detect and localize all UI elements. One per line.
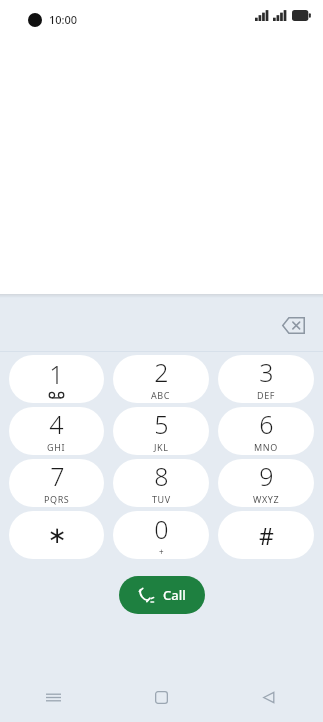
button[interactable]: Recents xyxy=(0,672,107,722)
staticText: TUV xyxy=(152,493,171,505)
button[interactable]: 3 xyxy=(218,355,314,403)
staticText: 2 xyxy=(154,355,169,389)
staticText: PQRS xyxy=(44,493,70,505)
button[interactable]: # xyxy=(218,511,314,559)
button[interactable]: Backspace xyxy=(276,308,310,342)
staticText: 5 xyxy=(154,407,169,441)
staticText: 1 xyxy=(49,357,64,391)
staticText: ABC xyxy=(151,389,171,401)
staticText: ∗ xyxy=(47,522,67,549)
staticText: Call xyxy=(163,586,186,604)
button[interactable]: 7 xyxy=(9,459,104,507)
staticText: JKL xyxy=(154,441,169,453)
button[interactable]: 9 xyxy=(218,459,314,507)
button[interactable]: ∗ xyxy=(9,511,104,559)
button[interactable]: 5 xyxy=(113,407,209,455)
button[interactable]: 8 xyxy=(113,459,209,507)
staticText: 7 xyxy=(50,459,65,493)
button[interactable]: 6 xyxy=(218,407,314,455)
button[interactable]: 2 xyxy=(113,355,209,403)
button[interactable]: 4 xyxy=(9,407,104,455)
staticText: 3 xyxy=(259,355,274,389)
staticText: 8 xyxy=(154,459,169,493)
staticText: GHI xyxy=(47,441,66,453)
staticText: MNO xyxy=(254,441,278,453)
button[interactable]: Back xyxy=(215,672,323,722)
staticText: 10:00 xyxy=(49,12,78,27)
button[interactable]: 0 xyxy=(113,511,209,559)
staticText: 4 xyxy=(49,407,64,441)
staticText: 6 xyxy=(259,407,274,441)
staticText: WXYZ xyxy=(253,493,280,505)
button[interactable]: Home xyxy=(107,672,215,722)
staticText: # xyxy=(259,520,274,551)
staticText: 0 xyxy=(154,512,169,546)
staticText: + xyxy=(159,546,164,557)
staticText: 9 xyxy=(259,459,274,493)
staticText: DEF xyxy=(257,389,276,401)
button[interactable]: Call xyxy=(119,576,205,614)
button[interactable]: 1 xyxy=(9,355,104,403)
